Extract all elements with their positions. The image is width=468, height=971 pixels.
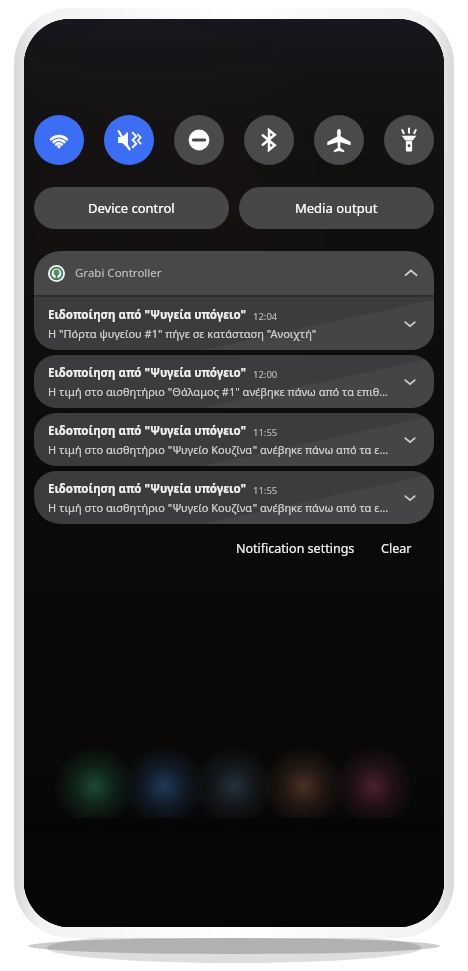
button[interactable]: Do not disturb [174,115,224,165]
button[interactable]: Grabi Controller [34,251,434,295]
button[interactable]: Expand notification [396,368,424,396]
staticText: Notification settings [236,540,355,557]
staticText: Ειδοποίηση από "Ψυγεία υπόγειο" [48,307,247,323]
button[interactable]: Device control [34,187,229,229]
button[interactable]: Airplane mode [314,115,364,165]
button[interactable]: Media output [239,187,434,229]
staticText: Η τιμή στο αισθητήριο "Ψυγείο Κουζίνα" α… [48,442,390,457]
button[interactable]: Ringer vibrate [104,115,154,165]
button[interactable]: Bluetooth [244,115,294,165]
staticText: Device control [88,199,175,217]
button[interactable]: Expand notification [396,426,424,454]
staticText: Ειδοποίηση από "Ψυγεία υπόγειο" [48,481,247,497]
staticText: Grabi Controller [75,265,162,281]
staticText: 12:04 [253,310,278,323]
button[interactable]: Wi-Fi [34,115,84,165]
staticText: Ειδοποίηση από "Ψυγεία υπόγειο" [48,365,247,381]
button[interactable]: Ειδοποίηση από "Ψυγεία υπόγειο" [34,471,434,524]
staticText: Η "Πόρτα ψυγείου #1" πήγε σε κατάσταση "… [48,326,317,341]
button[interactable]: Expand notification [396,484,424,512]
staticText: 12:00 [253,368,278,381]
staticText: Η τιμή στο αισθητήριο "Θάλαμος #1" ανέβη… [48,384,390,399]
staticText: 11:55 [253,426,278,439]
button[interactable]: Clear [373,534,420,563]
staticText: Clear [381,540,412,557]
staticText: Η τιμή στο αισθητήριο "Ψυγείο Κουζίνα" α… [48,500,390,515]
button[interactable]: Notification settings [228,534,363,563]
staticText: 11:55 [253,484,278,497]
button[interactable]: Expand notification [396,310,424,338]
staticText: Media output [295,199,378,217]
staticText: Ειδοποίηση από "Ψυγεία υπόγειο" [48,423,247,439]
button[interactable]: Ειδοποίηση από "Ψυγεία υπόγειο" [34,297,434,350]
button[interactable]: Ειδοποίηση από "Ψυγεία υπόγειο" [34,355,434,408]
button[interactable]: Ειδοποίηση από "Ψυγεία υπόγειο" [34,413,434,466]
button[interactable]: Flashlight [384,115,434,165]
